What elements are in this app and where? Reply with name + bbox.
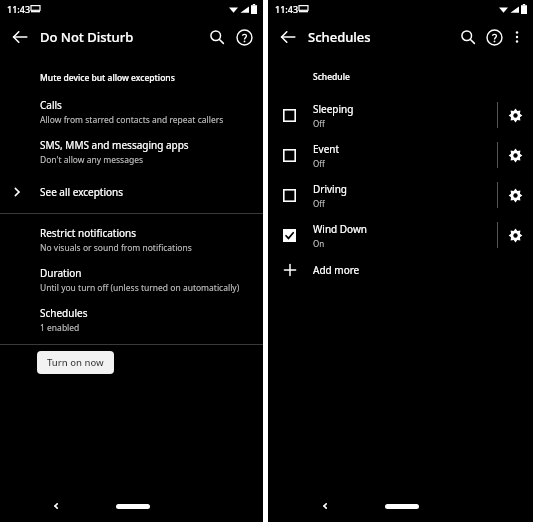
staticText: Turn on now [47,356,104,369]
button[interactable]: Driving [268,175,497,215]
button[interactable]: Help [231,24,257,50]
button[interactable]: See all exceptions [0,179,263,205]
button[interactable]: Turn on now [37,351,114,374]
button[interactable]: Home [116,504,150,509]
staticText: Mute device but allow exceptions [40,72,175,84]
button[interactable]: Settings for Event [498,135,533,175]
button[interactable]: Home [385,504,419,509]
button[interactable]: Search [204,24,230,50]
staticText: Schedules [308,28,371,46]
staticText: Restrict notifications [40,226,137,240]
button[interactable]: Back [275,24,301,50]
staticText: Off [313,118,325,129]
staticText: Duration [40,266,82,280]
button[interactable]: SMS, MMS and messaging apps [0,138,263,166]
staticText: Calls [40,98,62,112]
button[interactable]: Wind Down [268,215,497,255]
button[interactable]: Settings for Sleeping [498,95,533,135]
button[interactable]: Schedules [0,306,263,334]
staticText: SMS, MMS and messaging apps [40,138,189,152]
staticText: Allow from starred contacts and repeat c… [40,114,224,126]
button[interactable]: Sleeping [268,95,497,135]
button[interactable]: Settings for Driving [498,175,533,215]
staticText: 11:43 [275,3,299,15]
staticText: Driving [313,182,347,196]
staticText: 11:43 [7,3,31,15]
staticText: Wind Down [313,222,367,236]
button[interactable]: Calls [0,98,263,126]
staticText: Sleeping [313,102,354,116]
staticText: No visuals or sound from notifications [40,242,192,254]
staticText: Add more [313,263,360,277]
staticText: Event [313,142,340,156]
button[interactable]: Duration [0,266,263,294]
staticText: On [313,238,325,249]
staticText: Don't allow any messages [40,154,144,166]
staticText: Off [313,198,325,209]
button[interactable]: More options [505,25,529,49]
staticText: Schedule [313,71,350,83]
staticText: See all exceptions [40,185,124,199]
staticText: 1 enabled [40,322,80,334]
button[interactable]: Add more [268,255,533,285]
staticText: Schedules [40,306,88,320]
staticText: Until you turn off (unless turned on aut… [40,282,240,294]
button[interactable]: Back [51,501,61,511]
button[interactable]: Back [320,501,330,511]
button[interactable]: Back [7,24,33,50]
staticText: Off [313,158,325,169]
button[interactable]: Restrict notifications [0,226,263,254]
button[interactable]: Help [481,24,507,50]
staticText: Do Not Disturb [40,28,134,46]
button[interactable]: Settings for Wind Down [498,215,533,255]
button[interactable]: Event [268,135,497,175]
button[interactable]: Search [455,24,481,50]
